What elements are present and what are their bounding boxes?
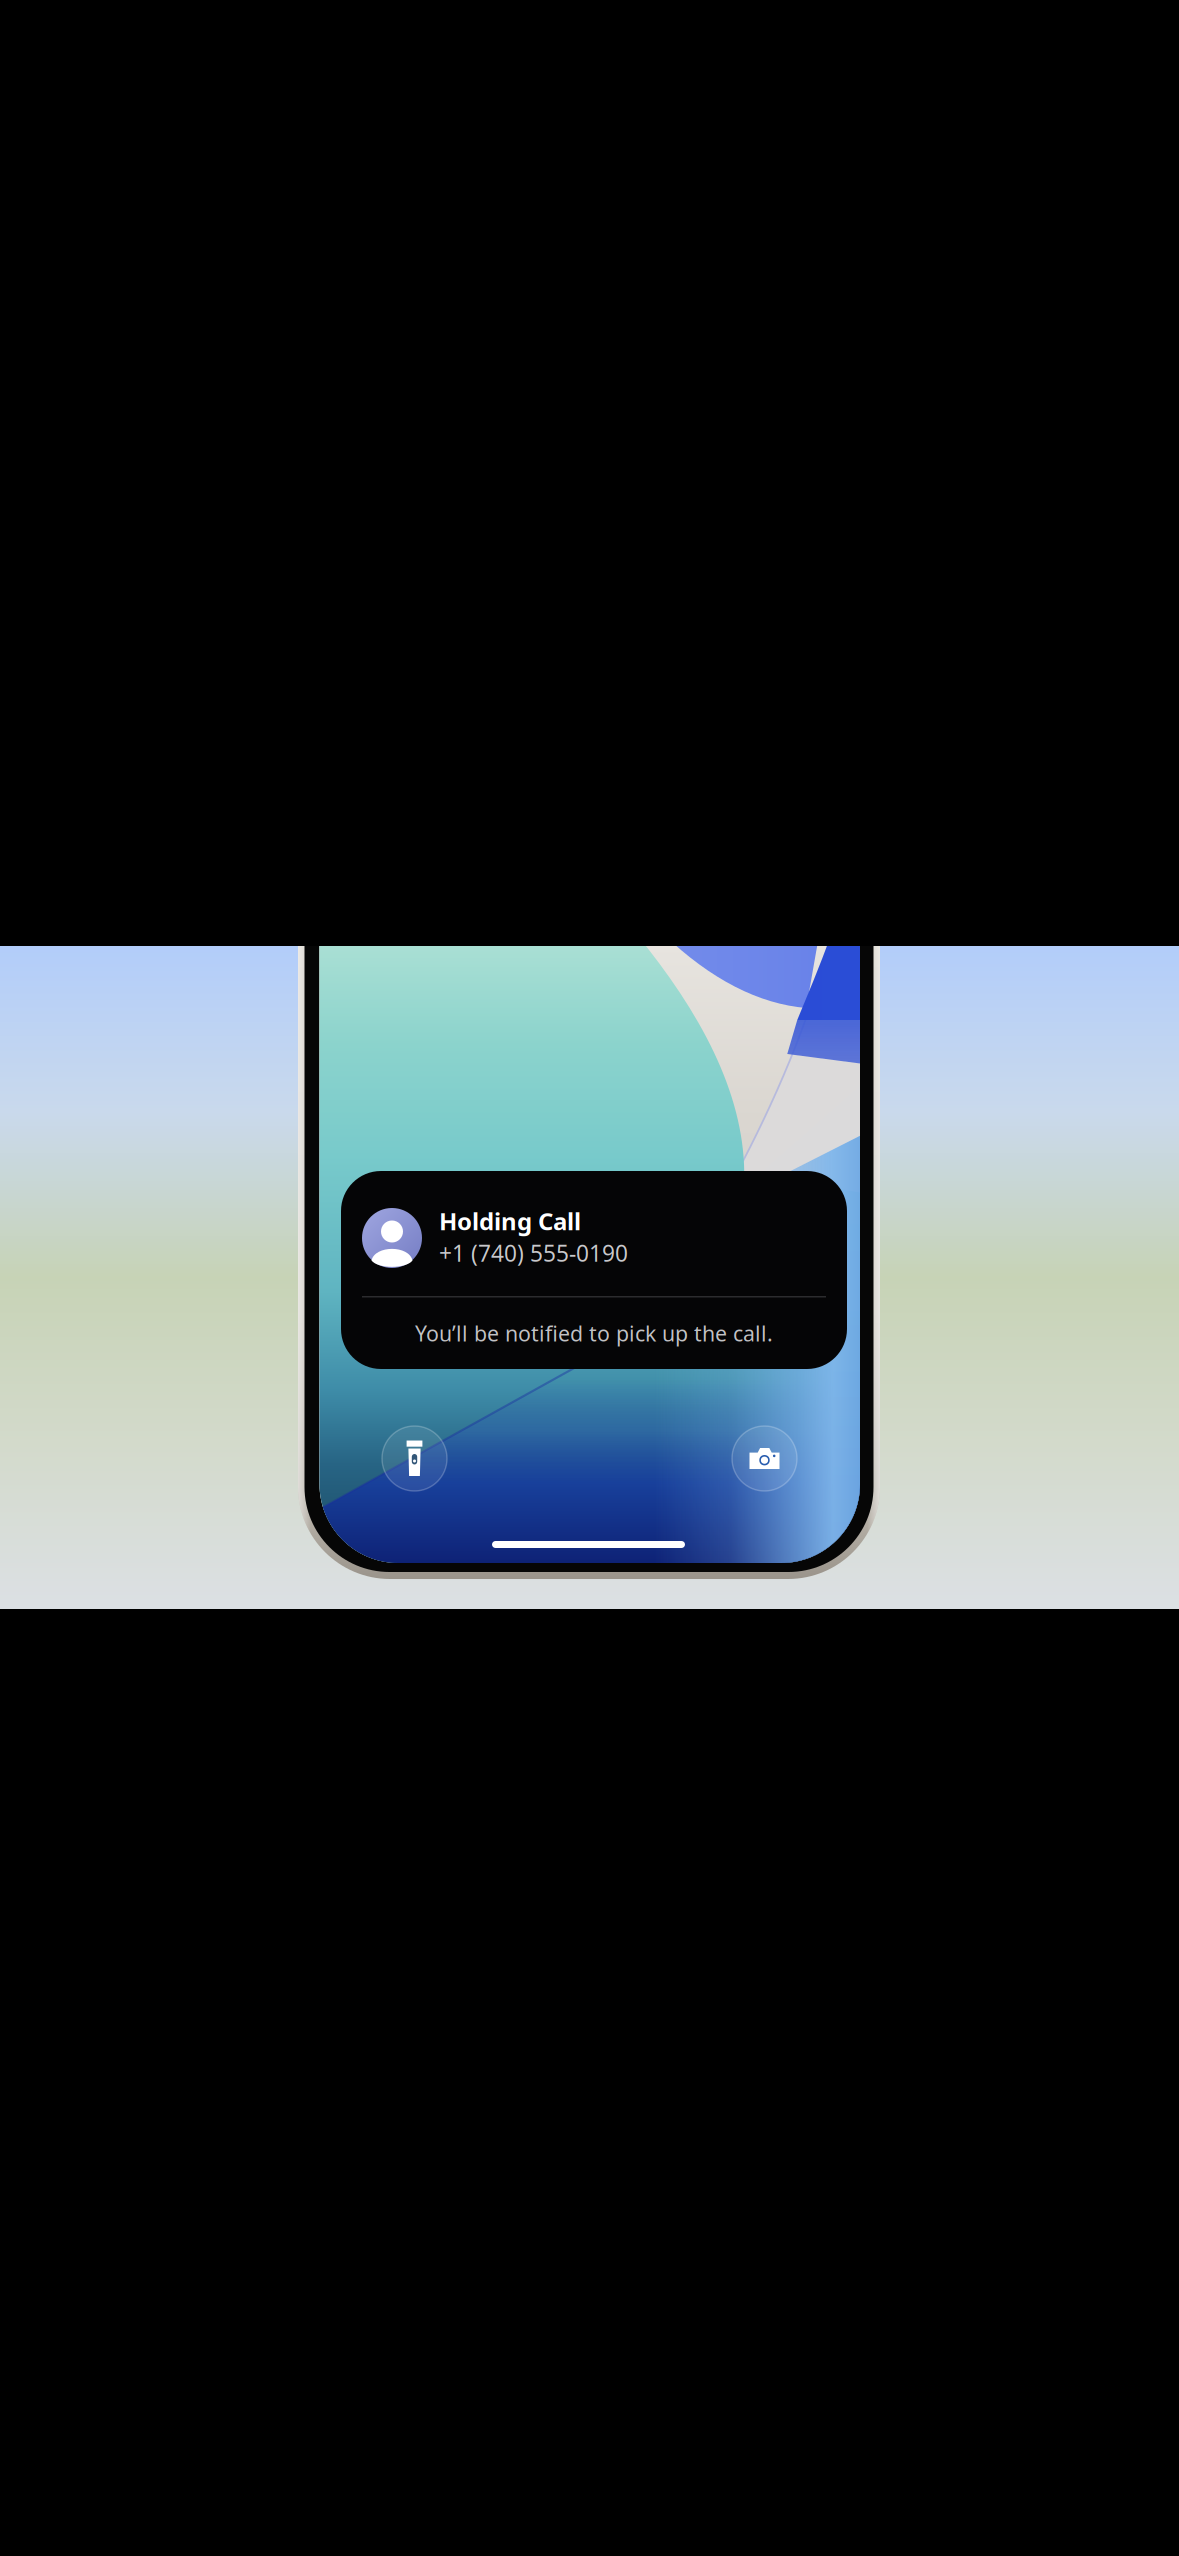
staticText: +1 (740) 555-0190 bbox=[439, 1238, 628, 1268]
staticText: Holding Call bbox=[439, 1205, 581, 1237]
staticText: You’ll be notified to pick up the call. bbox=[415, 1319, 773, 1347]
button[interactable]: Flashlight bbox=[382, 1426, 447, 1491]
button[interactable]: Camera bbox=[732, 1426, 797, 1491]
